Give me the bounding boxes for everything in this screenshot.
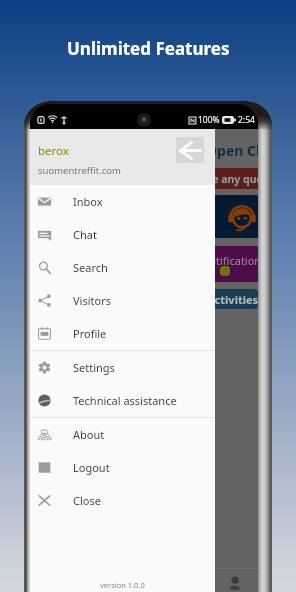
button[interactable]: About [30,418,215,451]
button[interactable]: Close [30,484,215,517]
staticText: Close [73,493,101,508]
button[interactable]: Back [176,137,204,163]
button[interactable]: Technical assistance [30,384,215,417]
staticText: Visitors [73,293,111,308]
staticText: Activities [207,292,258,307]
button[interactable]: Search [30,251,215,284]
button[interactable]: Chat [30,218,215,251]
staticText: berox [38,143,69,159]
staticText: Unlimited Features [67,37,230,60]
staticText: Search [73,260,108,275]
staticText: 100% [198,114,220,126]
staticText: About [73,427,105,442]
button[interactable]: Settings [30,351,215,384]
staticText: Technical assistance [73,393,177,408]
staticText: suomentreffit.com [38,164,121,177]
staticText: Open Chatting [206,141,258,160]
button[interactable]: Notifications [31,246,258,282]
staticText: 2:54 [238,114,255,126]
button[interactable]: Visitors [30,284,215,317]
staticText: Notifications [201,253,258,268]
staticText: Settings [73,360,115,375]
staticText: version 1.0.0 [100,580,145,590]
staticText: 0 [223,266,228,276]
button[interactable]: Profile [30,317,215,350]
button[interactable]: Inbox [30,185,215,218]
button[interactable] [31,195,258,238]
button[interactable]: Activities [31,289,258,309]
button[interactable]: Logout [30,451,215,484]
staticText: Profile [73,326,107,341]
other: Profile [228,576,242,590]
staticText: Logout [73,460,110,475]
staticText: Chat [73,227,97,242]
staticText: Inbox [73,194,103,209]
staticText: Do you have any questions? [154,172,258,186]
